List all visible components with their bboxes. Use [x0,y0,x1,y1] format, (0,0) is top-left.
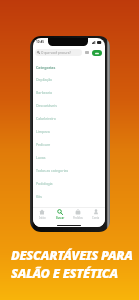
button[interactable]: Todas as categorias [33,164,105,177]
button[interactable]: Pedidos [69,207,87,220]
button[interactable]: Kits [33,190,105,203]
button[interactable]: Depilação [33,73,105,86]
staticText: Pedicure [36,142,51,147]
staticText: Categorias [36,65,56,70]
button[interactable]: O que você procura? [35,49,82,56]
staticText: Cabeleireiro [36,116,56,121]
button[interactable]: Carrinho [92,50,102,56]
staticText: Buscar [56,216,65,220]
staticText: O que você procura? [41,51,71,55]
button[interactable]: Descartáveis [33,99,105,112]
button[interactable]: Barbearia [33,86,105,99]
staticText: Depilação [36,77,53,82]
button[interactable]: Início [33,207,51,220]
button[interactable]: Conta [87,207,105,220]
staticText: Início [39,216,46,220]
staticText: Conta [92,216,100,220]
button[interactable]: Filtro [85,51,89,54]
button[interactable]: Cabeleireiro [33,112,105,125]
staticText: Descartáveis [36,103,57,108]
staticText: 10:45 [36,40,45,44]
staticText: SALÃO E ESTÉTICA [11,264,118,281]
staticText: Podologia [36,181,53,186]
button[interactable]: Podologia [33,177,105,190]
staticText: Luvas [36,155,46,160]
staticText: Todas as categorias [36,168,69,173]
staticText: Kits [36,194,43,199]
staticText: Barbearia [36,90,53,95]
staticText: Pedidos [73,216,83,220]
staticText: DESCARTÁVEIS PARA [11,246,133,263]
staticText: Limpeza [36,129,50,134]
button[interactable]: Buscar [51,207,69,220]
button[interactable]: Limpeza [33,125,105,138]
button[interactable]: Luvas [33,151,105,164]
button[interactable]: Pedicure [33,138,105,151]
